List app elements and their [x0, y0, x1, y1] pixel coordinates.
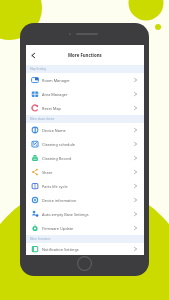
staticText: Device Name [42, 128, 66, 133]
staticText: Notification Settings [42, 247, 79, 252]
button[interactable]: Notification Settings [26, 243, 144, 255]
button[interactable]: Cleaning Record [26, 151, 144, 165]
button[interactable]: Auto-empty Base Settings [26, 207, 144, 221]
staticText: More about device [30, 117, 55, 121]
button[interactable]: Reset Map [26, 101, 144, 115]
button[interactable]: Back [29, 51, 38, 60]
button[interactable]: Device information [26, 193, 144, 207]
staticText: Auto-empty Base Settings [42, 212, 89, 217]
staticText: Device information [42, 198, 77, 203]
staticText: Reset Map [42, 106, 61, 111]
staticText: Room Manager [42, 78, 70, 83]
button[interactable]: Device Name [26, 123, 144, 137]
staticText: Firmware Update [42, 226, 74, 231]
button[interactable]: Area Manager [26, 87, 144, 101]
button[interactable]: Firmware Update [26, 221, 144, 235]
button[interactable]: Share [26, 165, 144, 179]
button[interactable]: Cleaning schedule [26, 137, 144, 151]
staticText: Parts life cycle [42, 184, 68, 189]
staticText: More Functions [68, 52, 102, 58]
staticText: Share [42, 170, 53, 175]
staticText: More Functions [30, 237, 51, 241]
staticText: Map Setting [30, 67, 46, 71]
button[interactable]: Parts life cycle [26, 179, 144, 193]
staticText: Area Manager [42, 92, 68, 97]
staticText: Cleaning schedule [42, 142, 75, 147]
button[interactable]: Room Manager [26, 73, 144, 87]
staticText: Cleaning Record [42, 156, 72, 161]
